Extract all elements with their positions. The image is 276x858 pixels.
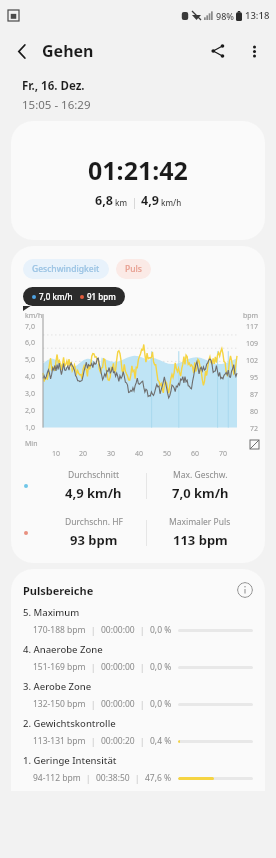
staticText: 80	[250, 407, 259, 417]
staticText: 72	[250, 424, 259, 434]
button[interactable]: Back	[4, 33, 40, 69]
staticText: Maximaler Puls	[169, 516, 231, 528]
staticText: 40	[135, 449, 144, 459]
staticText: km/h	[161, 197, 182, 208]
staticText: Min	[25, 439, 38, 449]
staticText: 4,9 km/h	[65, 484, 122, 502]
staticText: 1,0	[25, 423, 35, 433]
button[interactable]: Info	[237, 582, 253, 598]
staticText: 00:00:00	[101, 661, 135, 673]
staticText: 30	[107, 449, 116, 459]
staticText: 132-150 bpm	[33, 698, 86, 710]
staticText: Durchschnitt	[68, 469, 120, 481]
staticText: Gehen	[42, 40, 94, 62]
staticText: |	[135, 773, 140, 784]
staticText: 4,0	[25, 372, 35, 382]
button[interactable]: 01:21:42	[11, 121, 265, 240]
staticText: 98%	[216, 10, 234, 22]
staticText: 0,0 %	[150, 624, 172, 636]
staticText: 109	[246, 339, 259, 349]
button[interactable]: Puls	[116, 259, 151, 279]
staticText: 95	[250, 373, 259, 383]
staticText: |	[140, 662, 145, 673]
staticText: 91 bpm	[87, 291, 116, 302]
button[interactable]: More options	[236, 33, 272, 69]
staticText: 50	[163, 449, 172, 459]
staticText: 6,0	[25, 338, 35, 348]
staticText: |	[91, 662, 96, 673]
staticText: 151-169 bpm	[33, 661, 86, 673]
staticText: |	[91, 736, 96, 747]
button[interactable]: 5. Maximum	[11, 606, 265, 643]
staticText: 3,0	[25, 389, 35, 399]
staticText: |	[91, 625, 96, 636]
staticText: 47,6 %	[145, 772, 172, 784]
staticText: bpm	[243, 311, 259, 321]
staticText: 01:21:42	[88, 153, 188, 187]
staticText: 00:38:50	[96, 772, 130, 784]
staticText: 7,0	[25, 322, 35, 332]
button[interactable]: Durchschn. HF	[11, 516, 265, 549]
staticText: Durchschn. HF	[65, 516, 123, 528]
button[interactable]: 4. Anaerobe Zone	[11, 643, 265, 680]
staticText: 94-112 bpm	[33, 772, 81, 784]
staticText: 13:18	[245, 9, 270, 22]
staticText: 5. Maximum	[23, 606, 80, 619]
staticText: 5,0	[25, 355, 35, 365]
staticText: 93 bpm	[70, 531, 118, 549]
button[interactable]: 1. Geringe Intensität	[11, 754, 265, 791]
button[interactable]: Share	[200, 33, 236, 69]
staticText: 0,4 %	[150, 735, 172, 747]
staticText: 0,0 %	[150, 661, 172, 673]
staticText: 170-188 bpm	[33, 624, 86, 636]
staticText: 3. Aerobe Zone	[23, 680, 92, 693]
staticText: 102	[246, 356, 259, 366]
staticText: |	[140, 625, 145, 636]
staticText: 2,0	[25, 406, 35, 416]
staticText: |	[91, 699, 96, 710]
staticText: Geschwindigkeit	[32, 263, 100, 275]
staticText: 87	[250, 390, 259, 400]
staticText: |	[140, 699, 145, 710]
staticText: Pulsbereiche	[23, 583, 94, 598]
staticText: 6,8	[95, 192, 113, 209]
button[interactable]: 3. Aerobe Zone	[11, 680, 265, 717]
staticText: 2. Gewichtskontrolle	[23, 717, 116, 730]
button[interactable]: Geschwindigkeit	[23, 259, 109, 279]
staticText: 00:00:00	[101, 698, 135, 710]
staticText: 15:05 - 16:29	[22, 97, 91, 113]
staticText: |	[86, 773, 91, 784]
staticText: 00:00:20	[101, 735, 135, 747]
staticText: 4. Anaerobe Zone	[23, 643, 103, 656]
staticText: Max. Geschw.	[173, 469, 228, 481]
staticText: 1. Geringe Intensität	[23, 754, 117, 767]
staticText: Fr., 16. Dez.	[22, 78, 85, 94]
staticText: 70	[219, 449, 228, 459]
button[interactable]: 2. Gewichtskontrolle	[11, 717, 265, 754]
staticText: 10	[52, 449, 61, 459]
staticText: 113 bpm	[173, 531, 228, 549]
button[interactable]: Durchschnitt	[11, 469, 265, 502]
staticText: Puls	[125, 263, 142, 275]
staticText: 113-131 bpm	[33, 735, 86, 747]
staticText: 00:00:00	[101, 624, 135, 636]
staticText: km	[115, 197, 128, 208]
staticText: 0,0 %	[150, 698, 172, 710]
staticText: 7,0 km/h	[172, 484, 229, 502]
staticText: 117	[246, 322, 259, 332]
staticText: 7,0 km/h	[39, 291, 73, 302]
staticText: 20	[79, 449, 88, 459]
staticText: km/h	[25, 311, 43, 321]
staticText: 4,9	[141, 192, 159, 209]
staticText: |	[140, 736, 145, 747]
button[interactable]: Expand chart	[250, 440, 259, 449]
staticText: 60	[191, 449, 200, 459]
